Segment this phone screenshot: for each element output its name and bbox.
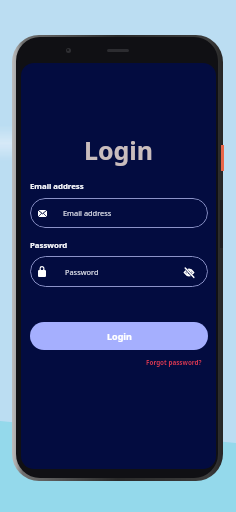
button[interactable]: Login [30, 322, 208, 350]
button[interactable]: Forgot password? [146, 358, 202, 367]
staticText: Login [21, 133, 216, 167]
staticText: Email address [30, 181, 84, 192]
button[interactable]: Email address [30, 198, 208, 228]
button[interactable]: Password [30, 256, 208, 287]
staticText: Password [30, 240, 68, 251]
button[interactable]: Toggle password visibility [181, 261, 197, 283]
staticText: Password [65, 267, 99, 277]
staticText: Email address [63, 208, 112, 218]
staticText: Login [107, 330, 132, 342]
